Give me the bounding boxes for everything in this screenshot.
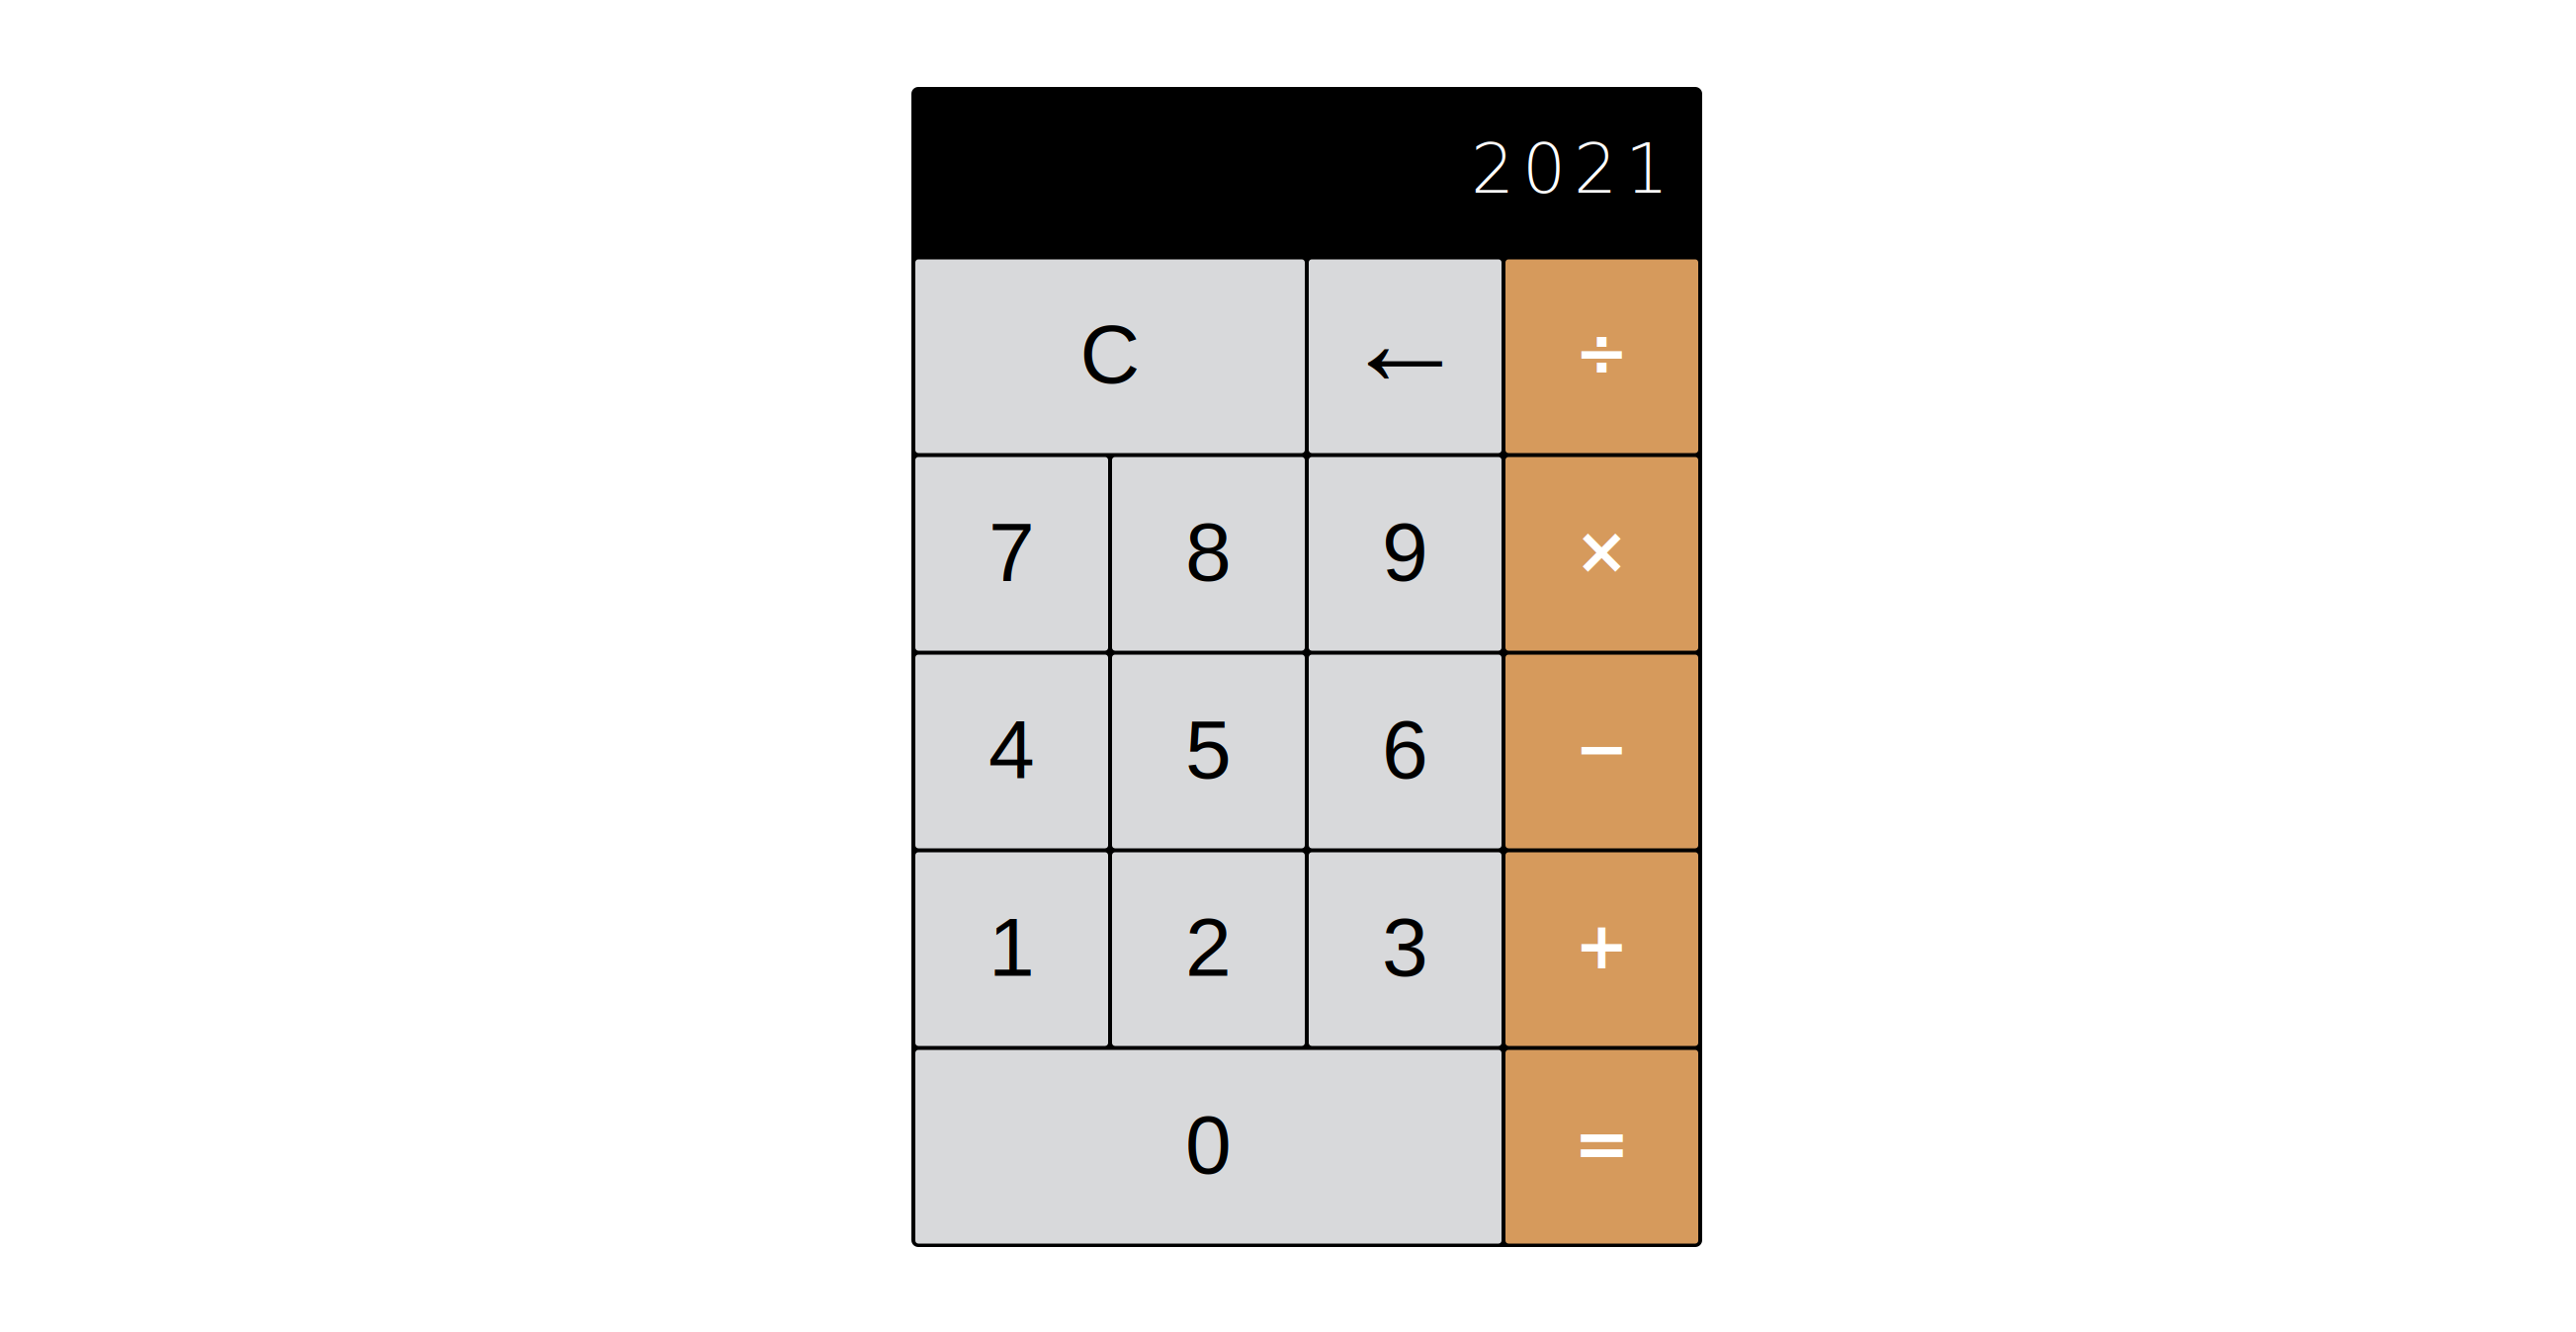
button[interactable]: Clear	[915, 259, 1305, 453]
button[interactable]: Plus	[1505, 852, 1698, 1046]
button[interactable]: 8	[1112, 457, 1305, 651]
button[interactable]: 3	[1309, 852, 1502, 1046]
staticText: ÷	[1575, 316, 1629, 391]
staticText: 1	[988, 901, 1035, 993]
button[interactable]: 4	[915, 655, 1108, 848]
staticText: 8	[1185, 506, 1232, 598]
staticText: 5	[1185, 703, 1232, 796]
staticText: =	[1574, 1105, 1630, 1183]
button[interactable]: 2	[1112, 852, 1305, 1046]
staticText: 2021	[1471, 129, 1669, 209]
staticText: 2	[1185, 901, 1232, 993]
button[interactable]: Divide	[1505, 259, 1698, 453]
button[interactable]: 7	[915, 457, 1108, 651]
staticText: 6	[1382, 703, 1428, 796]
staticText: 4	[988, 703, 1035, 796]
button[interactable]: 6	[1309, 655, 1502, 848]
staticText: −	[1575, 711, 1629, 786]
button[interactable]: 9	[1309, 457, 1502, 651]
button[interactable]: Multiply	[1505, 457, 1698, 651]
staticText: 7	[988, 506, 1035, 598]
staticText: +	[1575, 909, 1629, 984]
button[interactable]: Backspace	[1309, 259, 1502, 453]
button[interactable]: Minus	[1505, 655, 1698, 848]
button[interactable]: 0	[915, 1050, 1502, 1244]
staticText: 3	[1382, 901, 1428, 993]
button[interactable]: Equals	[1505, 1050, 1698, 1244]
button[interactable]: 5	[1112, 655, 1305, 848]
button[interactable]: 1	[915, 852, 1108, 1046]
staticText: 0	[1185, 1098, 1232, 1191]
staticText: ×	[1575, 513, 1629, 589]
staticText: C	[1080, 308, 1140, 401]
staticText: 9	[1382, 506, 1428, 598]
staticText: ←	[1342, 271, 1468, 411]
